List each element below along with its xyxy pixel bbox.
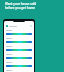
staticText: before you get home [5, 6, 36, 10]
staticText: Want your house sold [5, 2, 37, 6]
